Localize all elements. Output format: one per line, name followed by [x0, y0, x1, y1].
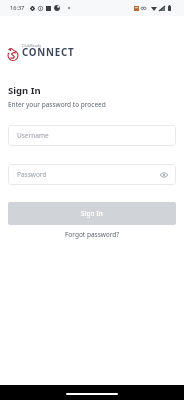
- button[interactable]: Show password: [157, 168, 170, 181]
- staticText: Password: [17, 170, 47, 179]
- button[interactable]: Sign In: [8, 202, 176, 225]
- staticText: Enter your password to proceed: [8, 100, 106, 109]
- staticText: Sign In: [81, 209, 103, 218]
- button[interactable]: Password: [8, 164, 176, 185]
- staticText: CONNECT: [22, 46, 75, 59]
- staticText: Username: [17, 131, 49, 140]
- staticText: 16:37: [10, 4, 25, 12]
- button[interactable]: Username: [8, 125, 176, 146]
- staticText: Sign In: [8, 84, 41, 97]
- staticText: ClubReady: [22, 43, 42, 48]
- button[interactable]: Forgot password?: [61, 228, 124, 241]
- staticText: Forgot password?: [65, 230, 120, 239]
